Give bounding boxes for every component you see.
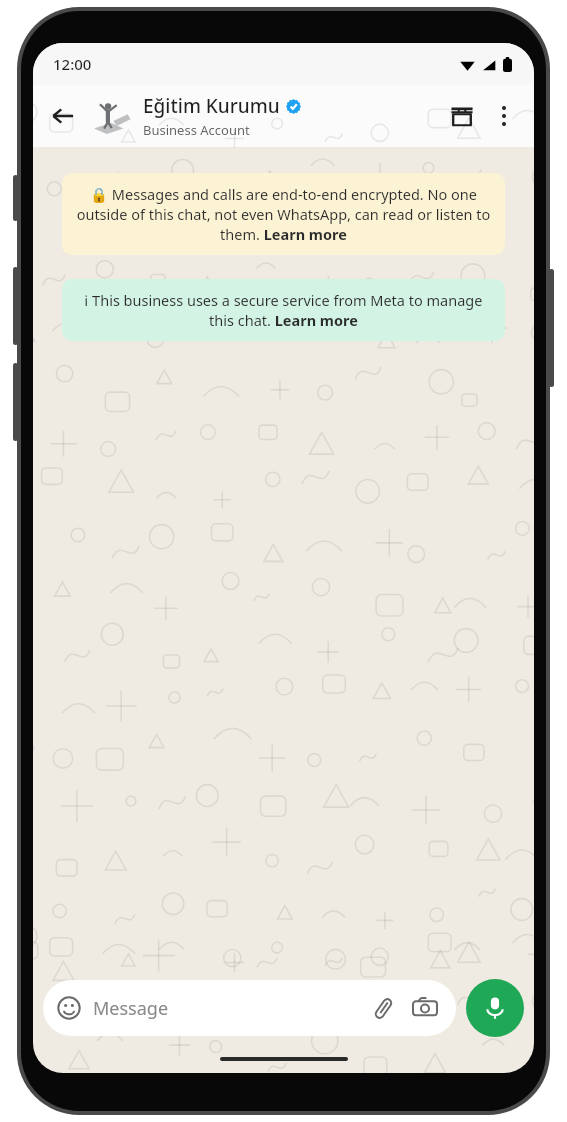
button[interactable]: Attach bbox=[366, 991, 400, 1025]
button[interactable]: ℹ This business uses a secure service fr… bbox=[62, 279, 505, 341]
button[interactable]: Back bbox=[41, 94, 85, 138]
staticText: Business Account bbox=[143, 121, 250, 139]
button[interactable]: Profile photo bbox=[89, 95, 131, 137]
button[interactable]: More options bbox=[484, 94, 524, 138]
button[interactable]: 🔒 Messages and calls are end-to-end encr… bbox=[62, 173, 505, 255]
staticText: 🔒 Messages and calls are end-to-end encr… bbox=[76, 184, 491, 244]
button[interactable]: Eğitim Kurumu bbox=[143, 93, 440, 139]
staticText: Message bbox=[93, 996, 366, 1021]
button[interactable]: Voice message bbox=[466, 979, 524, 1037]
staticText: ℹ This business uses a secure service fr… bbox=[76, 290, 491, 330]
other: Emoji bbox=[57, 996, 81, 1020]
button[interactable]: Camera bbox=[408, 991, 442, 1025]
button[interactable]: Emoji bbox=[43, 980, 456, 1036]
staticText: 12:00 bbox=[53, 54, 92, 74]
staticText: Eğitim Kurumu bbox=[143, 93, 280, 119]
button[interactable]: Business profile bbox=[440, 94, 484, 138]
